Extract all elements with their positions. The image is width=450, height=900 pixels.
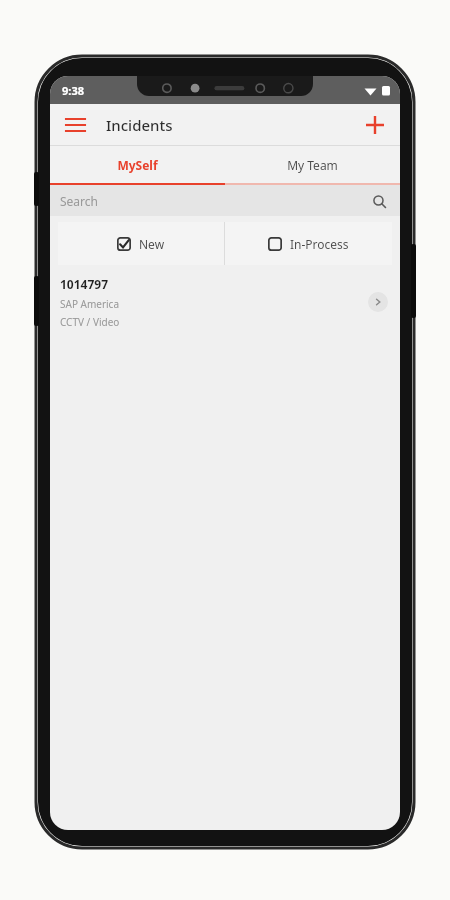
staticText: New xyxy=(139,236,165,252)
staticText: SAP America xyxy=(60,297,120,311)
other: Search xyxy=(370,192,388,210)
button[interactable]: Search xyxy=(50,185,400,216)
button[interactable]: In-Process xyxy=(225,222,392,265)
staticText: 1014797 xyxy=(60,276,109,292)
button[interactable]: Create new incident xyxy=(356,106,394,144)
button[interactable]: My Team xyxy=(225,146,400,183)
staticText: Incidents xyxy=(106,115,173,135)
button[interactable]: Open navigation menu xyxy=(56,106,94,144)
staticText: My Team xyxy=(287,157,338,173)
staticText: In-Process xyxy=(290,236,349,252)
staticText: CCTV / Video xyxy=(60,315,120,329)
staticText: MySelf xyxy=(117,157,158,173)
other: Open incident details xyxy=(368,292,388,312)
button[interactable]: New xyxy=(58,222,224,265)
staticText: Search xyxy=(60,193,98,209)
button[interactable]: MySelf xyxy=(50,146,225,183)
staticText: 9:38 xyxy=(62,83,84,98)
button[interactable]: 1014797 xyxy=(50,271,400,333)
